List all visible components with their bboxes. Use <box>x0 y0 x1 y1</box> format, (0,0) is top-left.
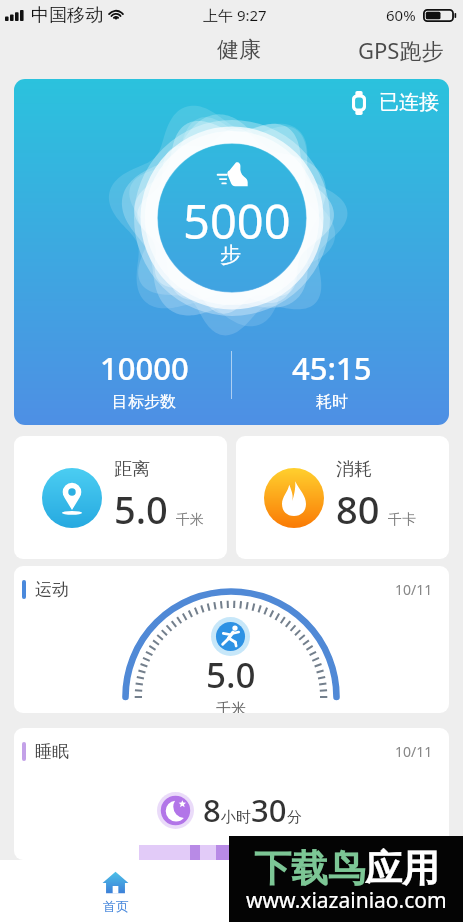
button[interactable]: 运动 <box>14 566 449 713</box>
staticText: 千米 <box>216 700 246 713</box>
staticText: 已连接 <box>379 90 439 115</box>
staticText: 消耗 <box>336 458 372 481</box>
staticText: 45:15 <box>292 347 372 389</box>
button[interactable]: 健康 <box>208 31 270 69</box>
staticText: 80 <box>336 483 380 535</box>
staticText: 千米 <box>176 511 204 529</box>
staticText: 5.0 <box>206 651 256 699</box>
staticText: 首页 <box>103 898 129 914</box>
button[interactable]: 首页 <box>0 860 231 922</box>
staticText: 10/11 <box>395 580 433 599</box>
button[interactable]: 设置 <box>231 860 463 922</box>
staticText: 耗时 <box>316 392 348 412</box>
button[interactable]: GPS跑步 <box>349 30 453 70</box>
staticText: 5000 <box>183 189 291 253</box>
staticText: 60% <box>386 5 416 25</box>
staticText: 分 <box>287 808 302 827</box>
staticText: 应用 <box>365 845 439 892</box>
staticText: 下载鸟 <box>254 845 365 892</box>
staticText: 目标步数 <box>112 392 176 412</box>
button[interactable]: Watch connected <box>14 79 449 425</box>
staticText: www.xiazainiao.com <box>246 886 447 915</box>
staticText: 10/11 <box>395 742 433 761</box>
staticText: GPS跑步 <box>358 35 444 65</box>
staticText: 步 <box>220 242 241 268</box>
button[interactable]: 消耗 <box>236 436 449 559</box>
button[interactable]: 睡眠 <box>14 728 449 860</box>
staticText: 30 <box>251 789 287 831</box>
staticText: 运动 <box>35 579 69 600</box>
button[interactable]: 距离 <box>14 436 227 559</box>
other: Watch connected <box>352 91 366 115</box>
staticText: 上午 9:27 <box>203 5 267 25</box>
button[interactable]: Watch connected <box>352 90 439 115</box>
staticText: 5.0 <box>114 483 168 535</box>
staticText: 距离 <box>114 458 150 481</box>
staticText: 睡眠 <box>35 741 69 762</box>
staticText: 健康 <box>217 36 261 64</box>
staticText: 设置 <box>334 898 360 914</box>
staticText: 中国移动 <box>31 4 103 27</box>
staticText: 千卡 <box>388 511 416 529</box>
staticText: 10000 <box>100 347 189 389</box>
staticText: 8 <box>203 789 221 831</box>
staticText: 小时 <box>221 808 251 827</box>
